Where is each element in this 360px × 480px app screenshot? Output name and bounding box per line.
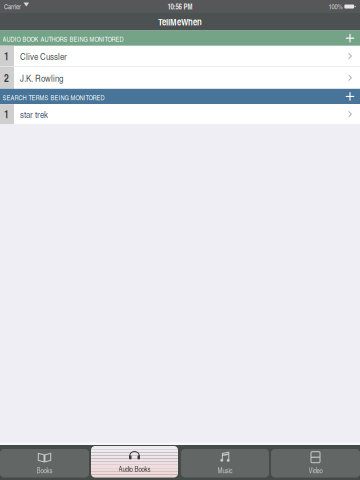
- staticText: AUDIO BOOK AUTHORS BEING MONITORED: [2, 34, 123, 44]
- button[interactable]: Add: [340, 30, 360, 46]
- staticText: Audio Books: [118, 464, 150, 474]
- staticText: SEARCH TERMS BEING MONITORED: [2, 93, 104, 102]
- staticText: 1: [4, 48, 9, 64]
- button[interactable]: 1: [0, 46, 360, 66]
- button[interactable]: Audio Books: [91, 446, 178, 477]
- staticText: 1: [4, 107, 9, 122]
- staticText: TellMeWhen: [158, 15, 202, 29]
- staticText: Clive Cussler: [20, 49, 67, 63]
- staticText: star trek: [20, 107, 48, 121]
- button[interactable]: Books: [0, 449, 89, 477]
- staticText: 100%: [328, 2, 342, 11]
- staticText: Music: [217, 465, 232, 475]
- button[interactable]: 1: [0, 104, 360, 124]
- staticText: Books: [36, 465, 52, 475]
- staticText: 10:56 PM: [167, 1, 192, 12]
- staticText: J.K. Rowling: [20, 71, 63, 84]
- button[interactable]: Add: [340, 89, 360, 104]
- button[interactable]: Music: [181, 449, 269, 477]
- staticText: Video: [308, 465, 322, 475]
- staticText: 2: [4, 70, 9, 85]
- staticText: Carrier: [4, 2, 21, 11]
- button[interactable]: 2: [0, 67, 360, 89]
- button[interactable]: Video: [271, 449, 360, 477]
